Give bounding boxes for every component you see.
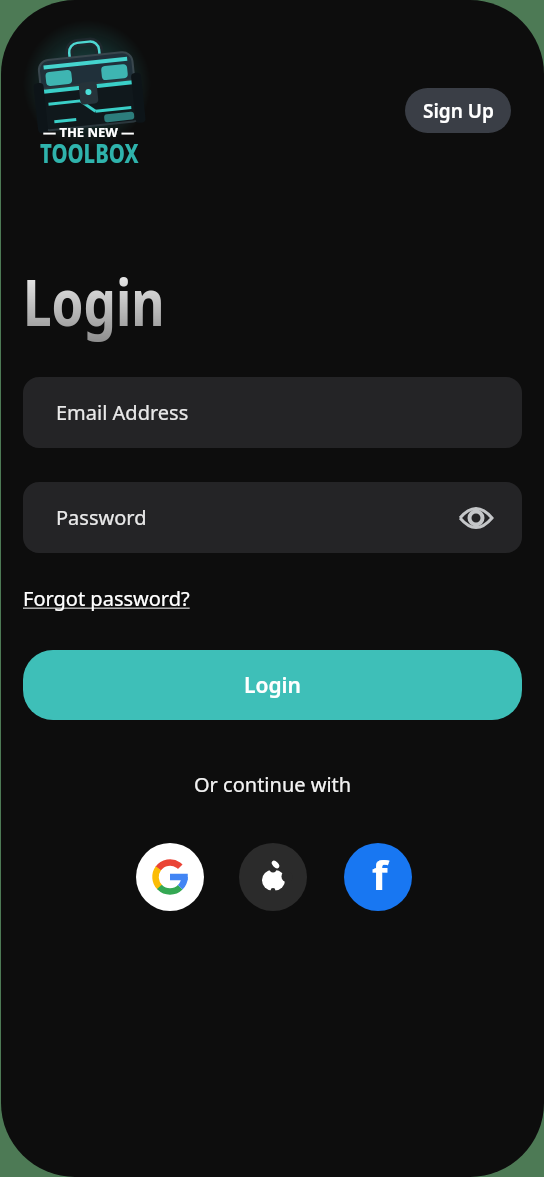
staticText: Password: [56, 504, 147, 531]
button[interactable]: [239, 843, 307, 911]
staticText: Login: [244, 671, 301, 700]
button[interactable]: Forgot password?: [23, 585, 190, 612]
staticText: Email Address: [56, 399, 189, 426]
button[interactable]: Password: [23, 482, 522, 553]
button[interactable]: Sign Up: [405, 88, 511, 133]
button[interactable]: Email Address: [23, 377, 522, 448]
button[interactable]: Login: [23, 650, 522, 720]
staticText: f: [372, 847, 388, 901]
staticText: Login: [23, 258, 165, 345]
staticText: Forgot password?: [23, 585, 190, 612]
button[interactable]: [136, 843, 204, 911]
staticText: Or continue with: [194, 771, 352, 798]
staticText: — THE NEW —: [43, 123, 135, 141]
button[interactable]: f: [344, 843, 412, 911]
staticText: TOOLBOX: [40, 135, 139, 170]
staticText: Sign Up: [423, 98, 494, 124]
